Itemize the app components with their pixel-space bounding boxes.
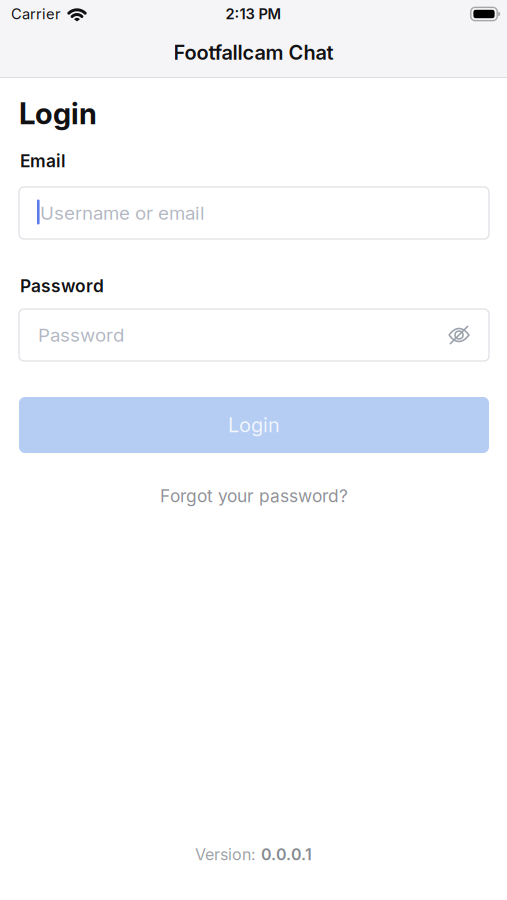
staticText: Password	[20, 276, 104, 296]
staticText: Footfallcam Chat	[173, 41, 333, 64]
staticText: Forgot your password?	[160, 486, 348, 506]
staticText: Carrier	[11, 5, 61, 23]
button[interactable]: Show password	[448, 324, 470, 346]
staticText: Login	[228, 413, 280, 437]
button[interactable]: Password	[19, 309, 489, 361]
staticText: Username or email	[40, 202, 205, 224]
button[interactable]: Forgot your password?	[19, 483, 489, 509]
staticText: Login	[19, 96, 97, 131]
staticText: 2:13 PM	[225, 5, 281, 23]
staticText: Email	[20, 151, 66, 171]
button[interactable]: Login	[19, 397, 489, 453]
button[interactable]: Username or email	[19, 187, 489, 239]
staticText: 0.0.0.1	[261, 845, 312, 864]
staticText: Password	[38, 324, 124, 346]
staticText: Version:	[195, 845, 261, 864]
